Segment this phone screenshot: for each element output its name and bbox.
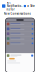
button[interactable]: Conversation <box>6 26 34 31</box>
button[interactable]: App logo <box>2 4 5 8</box>
button[interactable]: Conversation <box>6 36 34 41</box>
button[interactable]: Conversation <box>6 41 34 46</box>
staticText: a Site <box>27 4 35 8</box>
button[interactable]: Conversation <box>6 22 34 26</box>
staticText: New Conversations <box>3 12 30 15</box>
button[interactable]: Conversation <box>6 31 34 36</box>
staticText: Set Notifications for <box>7 1 23 11</box>
